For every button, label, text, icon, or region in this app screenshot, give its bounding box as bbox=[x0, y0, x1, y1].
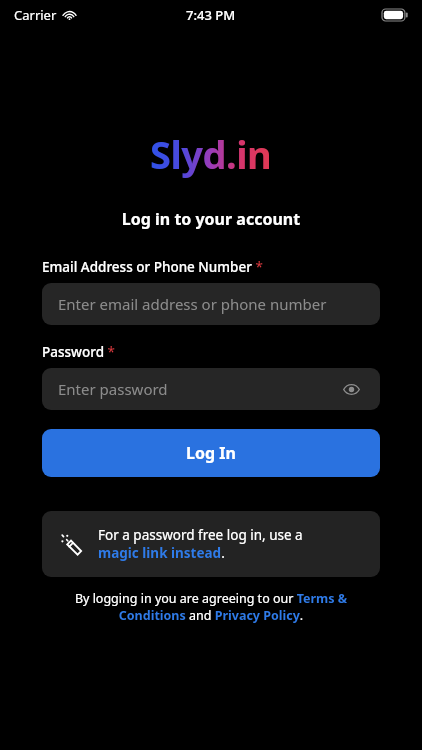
staticText: Log in to your account bbox=[0, 208, 422, 230]
staticText: Email Address or Phone Number * bbox=[42, 258, 263, 276]
staticText: Enter email address or phone number bbox=[58, 294, 327, 314]
staticText: Password * bbox=[42, 343, 115, 361]
staticText: By logging in you are agreeing to our Te… bbox=[48, 590, 374, 624]
button[interactable]: Log In bbox=[42, 429, 380, 477]
staticText: Slyd.in bbox=[150, 128, 272, 180]
staticText: 7:43 PM bbox=[186, 6, 236, 24]
button[interactable]: Enter password bbox=[42, 368, 380, 410]
staticText: Log In bbox=[186, 442, 236, 464]
button[interactable]: Enter email address or phone number bbox=[42, 283, 380, 325]
button[interactable]: Show password bbox=[338, 376, 364, 402]
staticText: For a password free log in, use a magic … bbox=[98, 526, 303, 562]
button[interactable]: By logging in you are agreeing to our Te… bbox=[42, 590, 380, 624]
staticText: Carrier bbox=[14, 6, 57, 24]
button[interactable]: For a password free log in, use a magic … bbox=[42, 511, 380, 577]
staticText: Enter password bbox=[58, 379, 168, 399]
